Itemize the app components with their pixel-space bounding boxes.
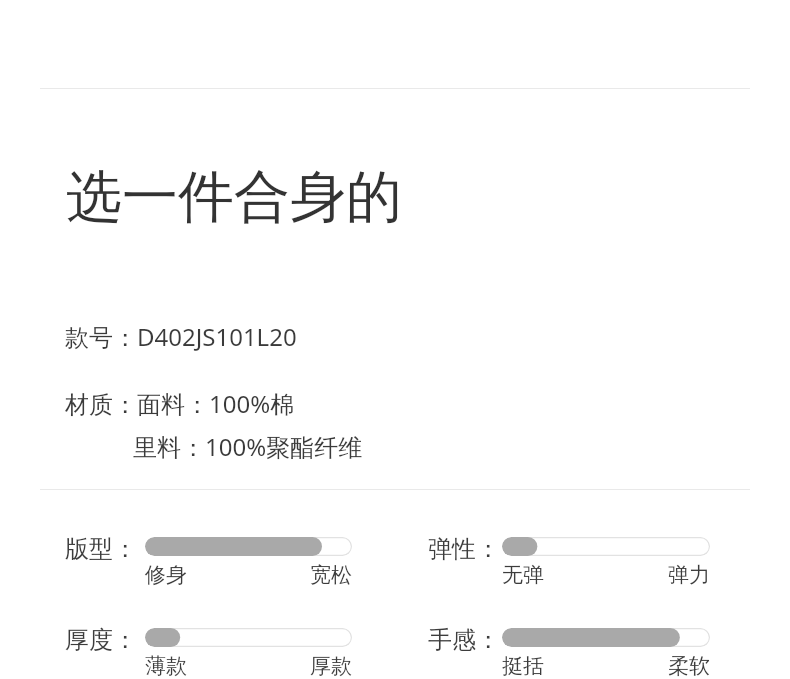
- staticText: 里料：100%聚酯纤维: [133, 430, 363, 463]
- staticText: 厚度：: [65, 625, 137, 655]
- staticText: 弹力: [668, 562, 710, 588]
- button[interactable]: 厚度: [145, 628, 352, 647]
- staticText: 宽松: [310, 562, 352, 588]
- staticText: 材质：面料：100%棉: [65, 387, 295, 420]
- staticText: 弹性：: [428, 534, 500, 564]
- button[interactable]: 版型: [145, 537, 352, 556]
- staticText: 手感：: [428, 625, 500, 655]
- staticText: 版型：: [65, 534, 137, 564]
- staticText: 柔软: [668, 653, 710, 679]
- staticText: 款号：D402JS101L20: [65, 320, 297, 353]
- staticText: 厚款: [310, 653, 352, 679]
- button[interactable]: 手感: [502, 628, 710, 647]
- staticText: 选一件合身的: [66, 162, 402, 233]
- button[interactable]: 弹性: [502, 537, 710, 556]
- staticText: 修身: [145, 562, 187, 588]
- staticText: 无弹: [502, 562, 544, 588]
- staticText: 薄款: [145, 653, 187, 679]
- staticText: 挺括: [502, 653, 544, 679]
